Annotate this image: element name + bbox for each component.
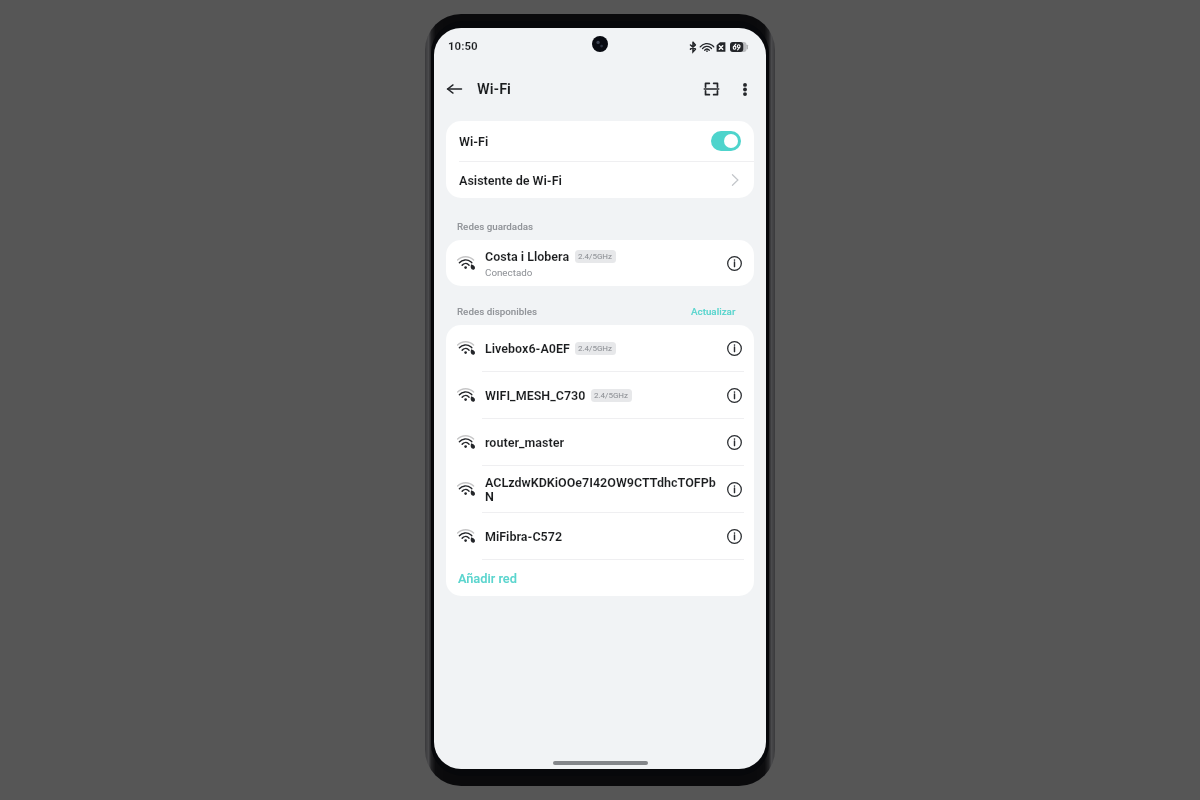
staticText: Costa i Llobera <box>485 249 570 264</box>
staticText: MiFibra-C572 <box>485 529 563 544</box>
staticText: 2.4/5GHz <box>578 252 613 261</box>
staticText: Livebox6-A0EF <box>485 341 570 356</box>
button[interactable]: MiFibra-C572 <box>446 513 754 559</box>
button[interactable]: Network details <box>721 476 747 502</box>
staticText: 10:50 <box>448 39 478 52</box>
staticText: Conectado <box>485 267 533 278</box>
button[interactable]: Wi-Fi <box>446 121 754 161</box>
button[interactable]: Actualizar <box>691 306 736 317</box>
button[interactable]: Scan QR code <box>694 72 728 106</box>
staticText: Wi-Fi <box>477 81 511 98</box>
button[interactable]: Livebox6-A0EF <box>446 325 754 371</box>
button[interactable]: Añadir red <box>446 560 754 596</box>
button[interactable]: Asistente de Wi-Fi <box>446 162 754 198</box>
button[interactable]: More options <box>728 72 762 106</box>
button[interactable]: WIFI_MESH_C730 <box>446 372 754 418</box>
staticText: WIFI_MESH_C730 <box>485 388 586 403</box>
staticText: Redes guardadas <box>457 221 534 232</box>
button[interactable]: router_master <box>446 419 754 465</box>
staticText: ACLzdwKDKiOOe7I42OW9CTTdhcTOFPbN <box>485 475 721 504</box>
button[interactable]: Network details <box>721 250 747 276</box>
button[interactable]: Wi-Fi toggle <box>711 131 741 151</box>
staticText: Redes disponibles <box>457 306 538 317</box>
button[interactable]: Costa i Llobera <box>446 240 754 286</box>
staticText: router_master <box>485 435 565 450</box>
button[interactable]: Back <box>435 70 473 108</box>
staticText: Asistente de Wi-Fi <box>459 173 562 188</box>
staticText: 2.4/5GHz <box>578 344 613 353</box>
staticText: 2.4/5GHz <box>594 391 629 400</box>
button[interactable]: Network details <box>721 335 747 361</box>
staticText: Wi-Fi <box>459 134 489 149</box>
staticText: Actualizar <box>691 306 736 317</box>
button[interactable]: Network details <box>721 382 747 408</box>
staticText: Añadir red <box>458 571 517 586</box>
button[interactable]: Network details <box>721 429 747 455</box>
button[interactable]: Network details <box>721 523 747 549</box>
button[interactable]: ACLzdwKDKiOOe7I42OW9CTTdhcTOFPbN <box>446 466 754 512</box>
